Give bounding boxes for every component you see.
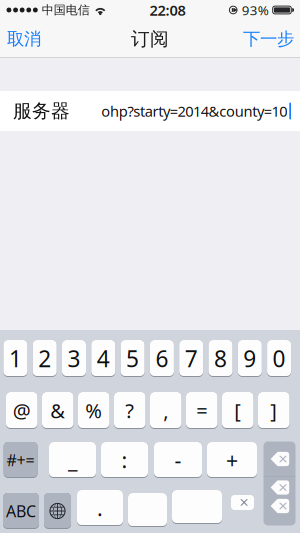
button[interactable]: 8 [208, 340, 232, 377]
staticText: ] [270, 397, 277, 424]
staticText: 22:08 [149, 0, 185, 20]
staticText: 93% [242, 1, 269, 19]
button[interactable] [128, 493, 167, 527]
staticText: ? [125, 397, 134, 424]
staticText: : [121, 446, 127, 474]
button[interactable]: ] [258, 392, 289, 429]
button[interactable]: ? [114, 392, 145, 429]
staticText: 6 [155, 343, 168, 373]
staticText: = [196, 397, 207, 424]
button[interactable]: + [207, 442, 257, 478]
staticText: 9 [243, 343, 256, 373]
button[interactable]: : [101, 442, 148, 478]
button[interactable]: Delete [231, 495, 254, 510]
button[interactable]: 4 [91, 340, 115, 377]
button[interactable]: #+= [4, 442, 38, 478]
button[interactable]: = [186, 392, 217, 429]
staticText: 8 [214, 343, 227, 373]
button[interactable]: % [78, 392, 109, 429]
button[interactable]: 2 [33, 340, 57, 377]
staticText: @ [13, 397, 31, 424]
staticText: - [174, 446, 181, 474]
button[interactable]: 5 [121, 340, 145, 377]
staticText: ABC [6, 500, 36, 522]
button[interactable]: . [77, 490, 123, 526]
staticText: 服务器 [13, 99, 70, 122]
button[interactable]: 9 [238, 340, 262, 377]
staticText: . [97, 494, 103, 522]
staticText: 4 [97, 343, 110, 373]
staticText: [ [234, 397, 241, 424]
staticText: % [85, 397, 102, 424]
button[interactable]: Delete [263, 441, 295, 525]
staticText: 2 [38, 343, 51, 373]
button[interactable]: , [150, 392, 181, 429]
staticText: , [163, 397, 168, 424]
button[interactable] [172, 490, 222, 524]
staticText: #+= [7, 449, 35, 471]
button[interactable]: 0 [267, 340, 291, 377]
button[interactable]: 下一步 [237, 20, 300, 58]
button[interactable]: _ [49, 442, 96, 478]
staticText: 3 [67, 343, 80, 373]
staticText: 1 [9, 343, 22, 373]
staticText: 中国电信 [42, 3, 90, 17]
staticText: _ [68, 446, 77, 474]
staticText: 7 [185, 343, 198, 373]
button[interactable]: 6 [150, 340, 174, 377]
button[interactable]: 1 [3, 340, 27, 377]
staticText: 取消 [7, 28, 41, 50]
staticText: 订阅 [131, 27, 169, 50]
staticText: ohp?starty=2014&county=10 [101, 101, 287, 121]
button[interactable]: Next keyboard [44, 493, 71, 529]
button[interactable]: - [154, 442, 202, 478]
button[interactable]: @ [6, 392, 37, 429]
staticText: 5 [126, 343, 139, 373]
button[interactable]: [ [222, 392, 253, 429]
staticText: 0 [273, 343, 286, 373]
button[interactable]: 7 [179, 340, 203, 377]
staticText: + [226, 446, 238, 474]
staticText: & [50, 397, 65, 424]
staticText: 下一步 [243, 28, 294, 50]
button[interactable]: & [42, 392, 73, 429]
button[interactable]: 3 [62, 340, 86, 377]
button[interactable]: 取消 [0, 20, 48, 58]
button[interactable]: ABC [3, 493, 39, 529]
